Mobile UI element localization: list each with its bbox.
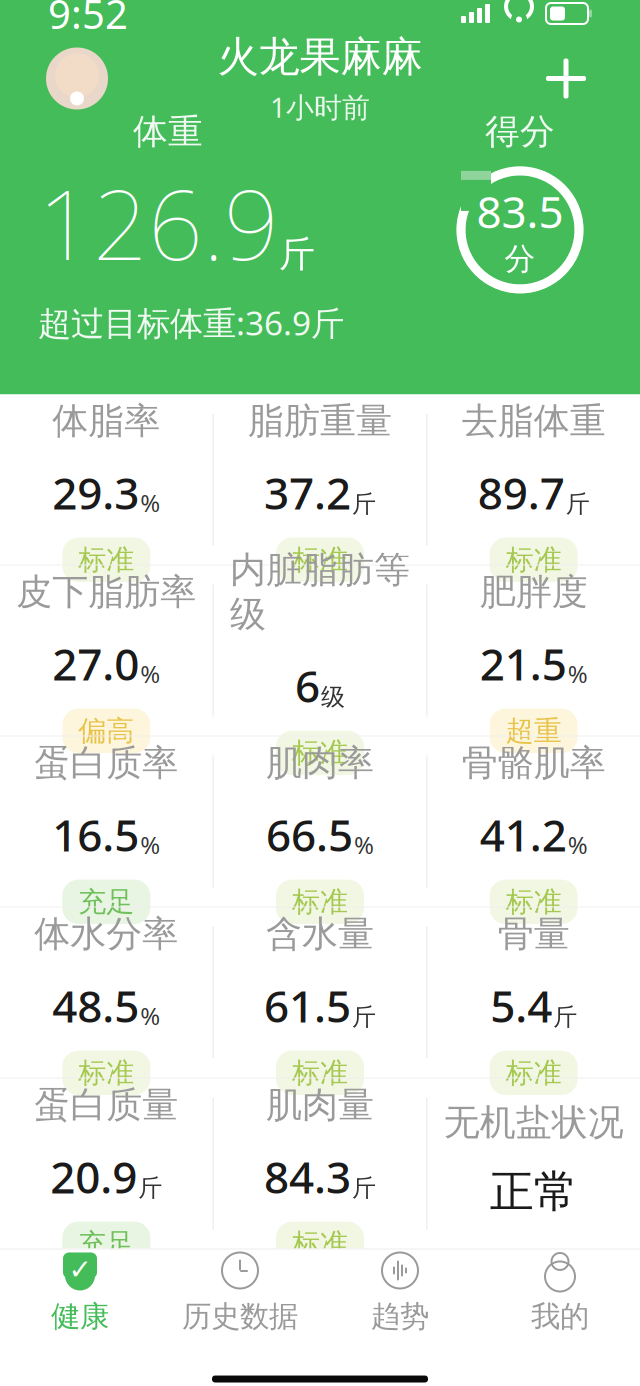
staticText: % xyxy=(140,1000,160,1032)
button[interactable]: 无机盐状况 xyxy=(427,1078,640,1248)
button[interactable]: 肥胖度 xyxy=(427,565,640,735)
staticText: 5.4 xyxy=(490,976,552,1035)
staticText: 标准 xyxy=(78,543,134,577)
button[interactable]: 趋势 xyxy=(320,1249,480,1335)
staticText: 体脂率 xyxy=(52,399,160,443)
staticText: 84.3 xyxy=(264,1147,351,1206)
staticText: 体水分率 xyxy=(34,912,178,956)
staticText: ✓ xyxy=(68,1254,91,1285)
staticText: 标准 xyxy=(292,1227,348,1261)
button[interactable]: 含水量 xyxy=(214,907,426,1077)
staticText: 61.5 xyxy=(264,976,351,1035)
button[interactable]: 添加 xyxy=(538,50,594,106)
staticText: 肥胖度 xyxy=(480,570,588,614)
staticText: 超过目标体重:36.9斤 xyxy=(38,300,344,345)
staticText: 得分 xyxy=(485,110,555,153)
staticText: % xyxy=(568,829,588,861)
button[interactable]: 骨量 xyxy=(427,907,640,1077)
staticText: 标准 xyxy=(292,543,348,577)
staticText: 标准 xyxy=(506,1056,562,1090)
button[interactable]: 脂肪重量 xyxy=(214,394,426,564)
staticText: 斤 xyxy=(566,489,590,519)
staticText: 火龙果麻麻 xyxy=(217,31,422,82)
button[interactable]: 内脏脂肪等级 xyxy=(214,565,426,735)
button[interactable]: 个人头像 xyxy=(46,47,108,109)
staticText: 66.5 xyxy=(266,805,353,864)
button[interactable]: 骨骼肌率 xyxy=(427,736,640,906)
staticText: 分 xyxy=(504,240,535,278)
button[interactable]: 体脂率 xyxy=(0,394,213,564)
staticText: 89.7 xyxy=(478,463,565,522)
staticText: 斤 xyxy=(279,232,315,276)
staticText: 1小时前 xyxy=(270,88,370,125)
button[interactable]: 去脂体重 xyxy=(427,394,640,564)
staticText: 含水量 xyxy=(266,912,374,956)
staticText: 斤 xyxy=(352,1002,376,1032)
button[interactable]: 肌肉率 xyxy=(214,736,426,906)
staticText: 126.9 xyxy=(38,159,279,286)
staticText: 斤 xyxy=(352,1173,376,1203)
staticText: 充足 xyxy=(78,885,134,919)
staticText: 48.5 xyxy=(52,976,139,1035)
staticText: 我的 xyxy=(531,1298,589,1334)
staticText: 骨量 xyxy=(498,912,570,956)
staticText: 趋势 xyxy=(371,1298,429,1334)
staticText: 正常 xyxy=(490,1165,578,1219)
staticText: 肌肉量 xyxy=(266,1083,374,1127)
staticText: 体重 xyxy=(133,110,203,153)
staticText: 标准 xyxy=(78,1056,134,1090)
button[interactable]: 蛋白质量 xyxy=(0,1078,213,1248)
staticText: 37.2 xyxy=(264,463,351,522)
staticText: 20.9 xyxy=(50,1147,137,1206)
button[interactable]: 肌肉量 xyxy=(214,1078,426,1248)
staticText: 标准 xyxy=(292,885,348,919)
staticText: 标准 xyxy=(292,1056,348,1090)
staticText: 斤 xyxy=(553,1002,577,1032)
staticText: 皮下脂肪率 xyxy=(16,570,196,614)
staticText: 超重 xyxy=(506,714,562,748)
staticText: % xyxy=(568,658,588,690)
staticText: 41.2 xyxy=(480,805,567,864)
button[interactable]: ✓ xyxy=(0,1249,160,1335)
staticText: 骨骼肌率 xyxy=(462,741,606,785)
staticText: 脂肪重量 xyxy=(248,399,392,443)
button[interactable]: 皮下脂肪率 xyxy=(0,565,213,735)
staticText: 27.0 xyxy=(52,634,139,693)
staticText: 肌肉率 xyxy=(266,741,374,785)
staticText: 去脂体重 xyxy=(462,399,606,443)
button[interactable]: 蛋白质率 xyxy=(0,736,213,906)
staticText: 斤 xyxy=(138,1173,162,1203)
staticText: 9:52 xyxy=(48,0,128,40)
staticText: 级 xyxy=(321,682,345,712)
button[interactable]: 体水分率 xyxy=(0,907,213,1077)
staticText: 29.3 xyxy=(52,463,139,522)
button[interactable]: 我的 xyxy=(480,1249,640,1335)
staticText: 偏高 xyxy=(78,714,134,748)
staticText: % xyxy=(140,487,160,519)
staticText: 斤 xyxy=(352,489,376,519)
staticText: 蛋白质量 xyxy=(34,1083,178,1127)
staticText: 83.5 xyxy=(476,182,563,240)
button[interactable]: 历史数据 xyxy=(160,1249,320,1335)
staticText: % xyxy=(140,829,160,861)
staticText: 标准 xyxy=(506,543,562,577)
staticText: 6 xyxy=(295,656,320,715)
staticText: 标准 xyxy=(292,736,348,770)
staticText: 内脏脂肪等级 xyxy=(230,548,410,636)
staticText: 蛋白质率 xyxy=(34,741,178,785)
staticText: 充足 xyxy=(78,1227,134,1261)
staticText: % xyxy=(354,829,374,861)
staticText: 历史数据 xyxy=(182,1298,298,1334)
staticText: 21.5 xyxy=(480,634,567,693)
staticText: 16.5 xyxy=(52,805,139,864)
staticText: 无机盐状况 xyxy=(444,1100,624,1145)
staticText: % xyxy=(140,658,160,690)
staticText: 健康 xyxy=(51,1298,109,1334)
staticText: 标准 xyxy=(506,885,562,919)
